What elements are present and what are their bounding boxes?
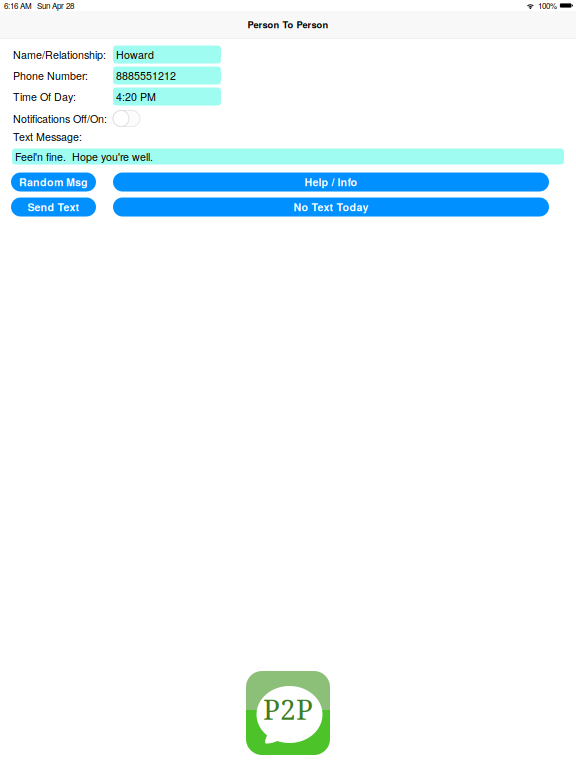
staticText: Howard	[116, 47, 154, 62]
button[interactable]: Notifications	[113, 110, 140, 126]
staticText: Notifications Off/On:	[13, 111, 107, 126]
staticText: Sun Apr 28	[37, 0, 74, 11]
staticText: P2P	[263, 690, 313, 728]
button[interactable]: Send Text	[11, 197, 96, 216]
staticText: Random Msg	[19, 174, 88, 190]
staticText: 4:20 PM	[116, 89, 156, 104]
staticText: Phone Number:	[13, 68, 88, 83]
staticText: Text Message:	[13, 129, 82, 144]
staticText: Help / Info	[304, 174, 357, 190]
button[interactable]: No Text Today	[113, 197, 549, 216]
staticText: Time Of Day:	[13, 89, 76, 104]
staticText: Person To Person	[247, 18, 328, 31]
staticText: Feel'n fine. Hope you're well.	[15, 149, 153, 164]
staticText: Send Text	[27, 199, 79, 215]
staticText: No Text Today	[293, 199, 368, 215]
button[interactable]: Help / Info	[113, 172, 549, 191]
button[interactable]: Random Msg	[11, 172, 96, 191]
staticText: 100%	[538, 0, 557, 11]
staticText: 8885551212	[116, 68, 176, 83]
staticText: Name/Relationship:	[13, 47, 106, 62]
staticText: 6:16 AM	[4, 0, 32, 11]
